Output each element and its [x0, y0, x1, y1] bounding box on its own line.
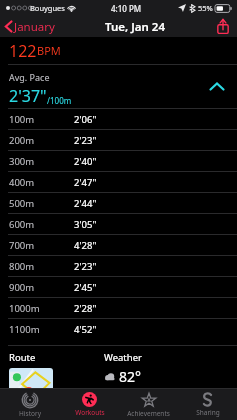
staticText: 82°	[119, 367, 142, 386]
staticText: 800m	[9, 260, 74, 273]
button[interactable]: 800m	[0, 256, 237, 276]
button[interactable]: January	[0, 16, 61, 37]
staticText: 900m	[9, 281, 74, 294]
staticText: 4'52"	[74, 323, 97, 336]
staticText: 400m	[9, 176, 74, 189]
staticText: Tue, Jan 24	[105, 19, 165, 35]
staticText: Route	[9, 351, 36, 364]
button[interactable]: Avg. Pace	[0, 65, 237, 108]
staticText: January	[14, 19, 55, 35]
button[interactable]: 900m	[0, 277, 237, 297]
staticText: 2'06"	[74, 113, 97, 126]
staticText: 2'23"	[74, 134, 97, 147]
staticText: 2'45"	[74, 281, 97, 294]
button[interactable]: 500m	[0, 193, 237, 213]
staticText: 600m	[9, 218, 74, 231]
button[interactable]: Sharing	[178, 389, 237, 420]
staticText: 4'28"	[74, 239, 97, 252]
staticText: BPM	[37, 43, 61, 58]
button[interactable]: 300m	[0, 151, 237, 171]
staticText: 1100m	[9, 323, 74, 336]
staticText: Achievements	[127, 409, 170, 418]
staticText: 3'05"	[74, 218, 97, 231]
button[interactable]: 200m	[0, 130, 237, 150]
staticText: 300m	[9, 155, 74, 168]
staticText: 2'23"	[74, 260, 97, 273]
button[interactable]: Route	[9, 351, 104, 399]
button[interactable]: 600m	[0, 214, 237, 234]
staticText: 2'28"	[74, 302, 97, 315]
button[interactable]: 700m	[0, 235, 237, 255]
button[interactable]: Share	[209, 16, 237, 37]
button[interactable]: Weather	[104, 351, 237, 400]
button[interactable]: 1000m	[0, 298, 237, 318]
staticText: 700m	[9, 239, 74, 252]
staticText: 122	[9, 40, 37, 62]
button[interactable]: 100m	[0, 109, 237, 129]
staticText: 2'40"	[74, 155, 97, 168]
staticText: Workouts	[75, 408, 105, 417]
staticText: 1000m	[9, 302, 74, 315]
staticText: Weather	[104, 351, 142, 364]
staticText: Bouygues	[30, 3, 65, 13]
staticText: 500m	[9, 197, 74, 210]
button[interactable]: 1100m	[0, 319, 237, 339]
staticText: 2'44"	[74, 197, 97, 210]
button[interactable]: Workouts	[60, 389, 119, 420]
staticText: Sharing	[196, 408, 220, 417]
staticText: 4:10 PM	[111, 3, 142, 14]
button[interactable]: Achievements	[119, 389, 178, 420]
staticText: History	[19, 409, 41, 418]
staticText: 200m	[9, 134, 74, 147]
staticText: 2'47"	[74, 176, 97, 189]
button[interactable]: 400m	[0, 172, 237, 192]
staticText: 2'37"	[9, 85, 47, 107]
staticText: Avg. Pace	[9, 71, 50, 83]
button[interactable]: History	[0, 389, 60, 420]
staticText: 100m	[9, 113, 74, 126]
staticText: Humidity: 70%	[104, 388, 166, 400]
staticText: /100m	[47, 95, 72, 106]
staticText: 55%	[198, 3, 213, 13]
